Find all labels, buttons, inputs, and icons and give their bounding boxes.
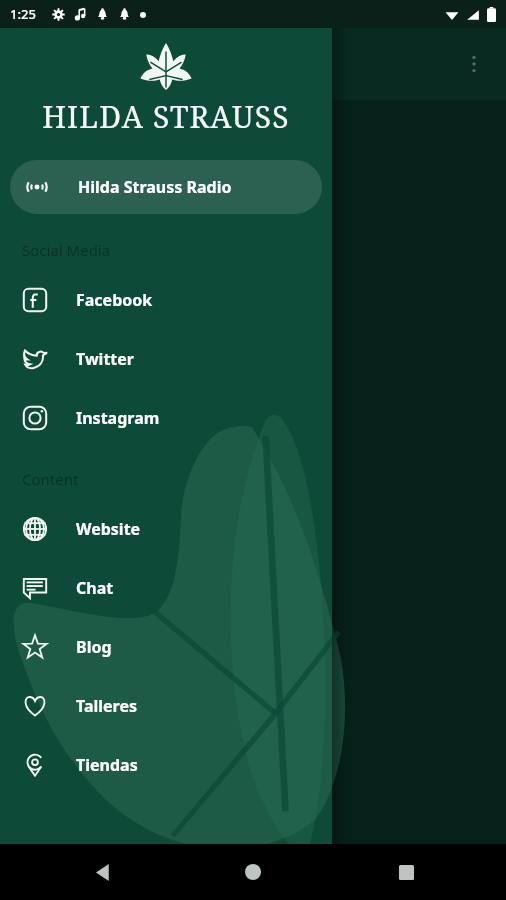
staticText: Website	[76, 518, 141, 540]
button[interactable]: Recent apps	[382, 848, 430, 896]
staticText: Tiendas	[76, 754, 138, 776]
staticText: HILDA STRAUSS	[0, 96, 332, 137]
staticText: Blog	[76, 636, 112, 658]
staticText: Instagram	[76, 407, 160, 429]
staticText: Chat	[76, 577, 114, 599]
button[interactable]: Instagram	[0, 388, 332, 447]
button[interactable]: Website	[0, 499, 332, 558]
staticText: Social Media	[22, 240, 111, 260]
button[interactable]: Tiendas	[0, 735, 332, 794]
staticText: Hilda Strauss Radio	[78, 176, 232, 198]
button[interactable]: Facebook	[0, 270, 332, 329]
staticText: Content	[22, 469, 79, 489]
staticText: Talleres	[76, 695, 138, 717]
button[interactable]: Twitter	[0, 329, 332, 388]
button[interactable]: More options	[450, 40, 498, 88]
button[interactable]: Chat	[0, 558, 332, 617]
staticText: 1:25	[10, 5, 36, 23]
button[interactable]: Home	[229, 848, 277, 896]
staticText: Twitter	[76, 348, 134, 370]
button[interactable]: Hilda Strauss Radio	[10, 160, 322, 214]
button[interactable]: Back	[80, 848, 128, 896]
button[interactable]: Blog	[0, 617, 332, 676]
button[interactable]: Talleres	[0, 676, 332, 735]
staticText: Facebook	[76, 289, 153, 311]
